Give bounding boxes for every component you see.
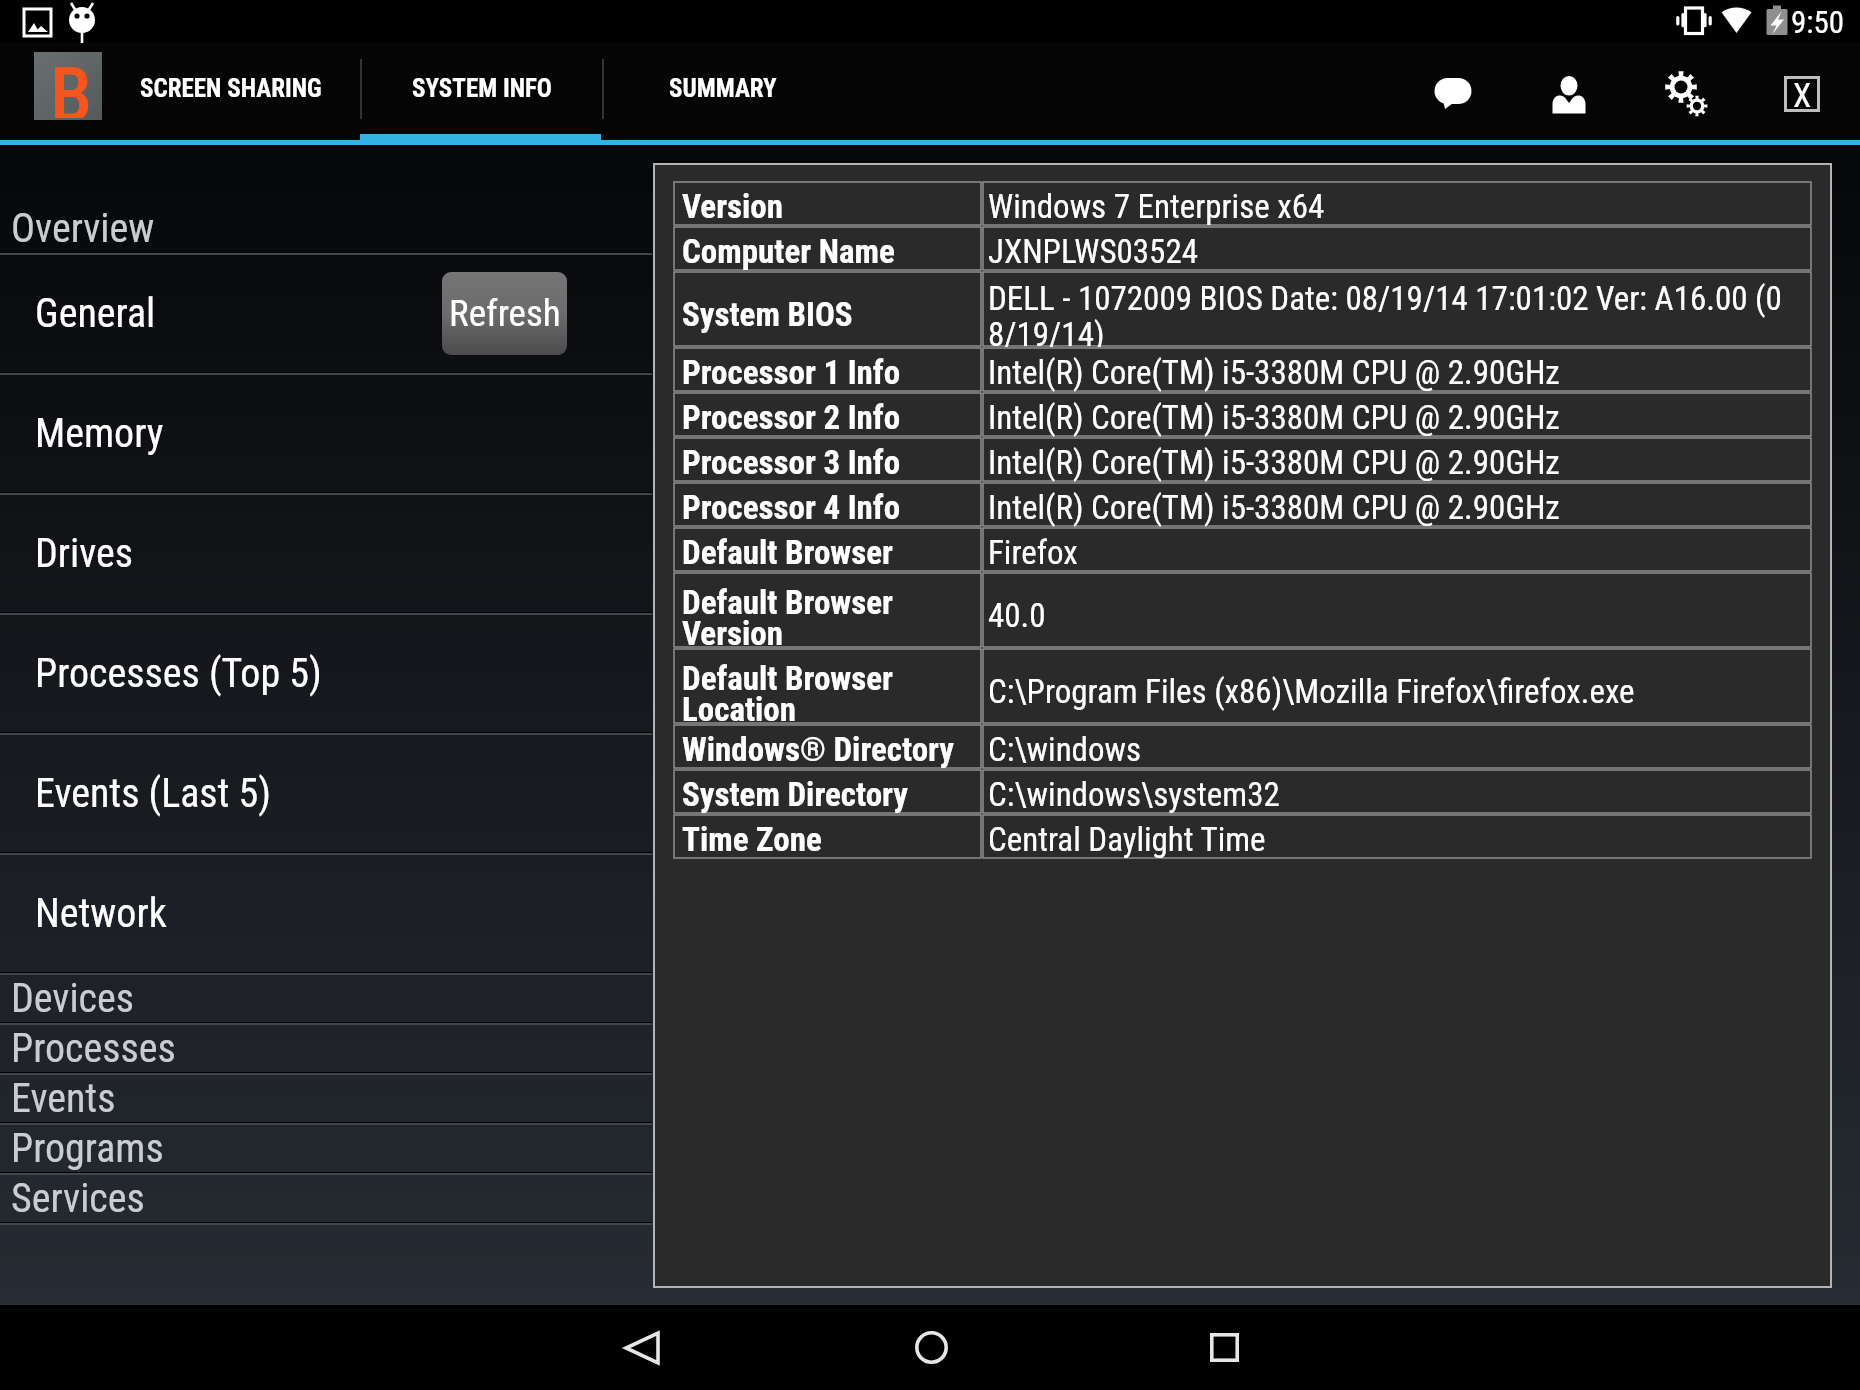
staticText: C:\windows\system32 [988,775,1280,814]
staticText: System Directory [682,775,908,814]
staticText: Intel(R) Core(TM) i5-3380M CPU @ 2.90GHz [988,488,1560,527]
button[interactable]: Memory [0,375,652,492]
staticText: Processes [11,1025,176,1072]
button[interactable]: Chat [1420,56,1486,122]
staticText: Overview [11,205,155,252]
staticText: Services [11,1175,145,1222]
button[interactable]: Drives [0,495,652,612]
button[interactable]: Participants [1536,56,1602,122]
button[interactable]: General [0,255,652,372]
staticText: Version [682,187,784,226]
staticText: Processor 3 Info [682,443,901,482]
staticText: SYSTEM INFO [412,74,552,103]
staticText: System BIOS [682,295,853,334]
button[interactable]: Events (Last 5) [0,735,652,852]
staticText: Drives [35,530,134,577]
button[interactable]: SUMMARY [604,43,842,134]
staticText: Default Browser Version [682,583,893,648]
staticText: Time Zone [682,820,822,859]
button[interactable]: SYSTEM INFO [362,43,602,134]
staticText: X [1793,76,1812,112]
staticText: Windows® Directory [682,730,954,769]
button[interactable]: SCREEN SHARING [102,43,360,134]
staticText: Refresh [449,292,561,335]
staticText: Windows 7 Enterprise x64 [988,187,1325,226]
staticText: Firefox [988,533,1078,572]
staticText: C:\windows [988,730,1142,769]
button[interactable]: B [34,52,102,120]
staticText: General [35,290,156,337]
staticText: Intel(R) Core(TM) i5-3380M CPU @ 2.90GHz [988,398,1560,437]
button[interactable]: Refresh [442,272,567,355]
staticText: Processor 2 Info [682,398,901,437]
button[interactable]: Processes (Top 5) [0,615,652,732]
staticText: DELL - 1072009 BIOS Date: 08/19/14 17:01… [988,279,1782,347]
staticText: Processor 4 Info [682,488,901,527]
button[interactable]: Overview [0,145,652,252]
staticText: Central Daylight Time [988,820,1266,859]
button[interactable]: Home [889,1305,974,1390]
button[interactable]: Network [0,855,652,972]
staticText: 40.0 [988,596,1046,635]
staticText: Devices [11,975,135,1022]
staticText: 9:50 [1791,4,1845,40]
staticText: Programs [11,1125,164,1172]
button[interactable]: Events [0,1075,652,1122]
staticText: Processor 1 Info [682,353,901,392]
staticText: Events (Last 5) [35,770,272,817]
button[interactable]: Back [599,1305,684,1390]
button[interactable]: Settings [1653,56,1719,122]
button[interactable]: Programs [0,1125,652,1172]
button[interactable]: Close session [1769,56,1835,122]
staticText: SUMMARY [669,74,777,103]
staticText: Computer Name [682,232,895,271]
button[interactable]: Services [0,1175,652,1222]
staticText: C:\Program Files (x86)\Mozilla Firefox\f… [988,672,1635,711]
staticText: Intel(R) Core(TM) i5-3380M CPU @ 2.90GHz [988,353,1560,392]
staticText: JXNPLWS03524 [988,232,1198,271]
staticText: Default Browser [682,533,893,572]
button[interactable]: Processes [0,1025,652,1072]
staticText: Intel(R) Core(TM) i5-3380M CPU @ 2.90GHz [988,443,1560,482]
button[interactable]: Devices [0,975,652,1022]
staticText: Network [35,890,167,937]
staticText: Processes (Top 5) [35,650,322,697]
staticText: Events [11,1075,116,1122]
staticText: B [50,50,93,118]
staticText: Memory [35,410,164,457]
staticText: SCREEN SHARING [140,74,322,103]
staticText: Default Browser Location [682,659,893,724]
button[interactable]: Recents [1182,1305,1267,1390]
